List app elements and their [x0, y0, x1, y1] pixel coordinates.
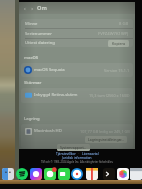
- staticText: ·: [76, 152, 82, 156]
- staticText: Inbyggd Retina-skärm: [34, 92, 78, 98]
- staticText: Version 15.1.1: [104, 68, 130, 73]
- button[interactable]: Messenger: [30, 168, 42, 180]
- button[interactable]: Spotify: [16, 168, 28, 180]
- button[interactable]: Uttest datering: [21, 39, 133, 47]
- button[interactable]: Finder: [2, 168, 14, 180]
- button[interactable]: Finder window: [130, 168, 142, 180]
- staticText: Licensavtal: [82, 152, 99, 156]
- button[interactable]: Serienummer: [21, 29, 133, 38]
- button[interactable]: Notes: [86, 168, 98, 180]
- button[interactable]: Minne: [21, 19, 133, 28]
- staticText: macOS: [24, 55, 39, 61]
- button[interactable]: Back: [21, 5, 28, 12]
- button[interactable]: Messages: [44, 168, 56, 180]
- button[interactable]: macOS Sequoia: [21, 63, 133, 77]
- button[interactable]: Inbyggd Retina-skärm: [21, 88, 133, 102]
- staticText: Uttest datering: [25, 40, 55, 46]
- button[interactable]: Forward: [28, 5, 35, 12]
- staticText: Kopiera: [112, 41, 125, 46]
- staticText: Systemrapport…: [60, 145, 87, 150]
- button[interactable]: Lagringsinställningar…: [85, 136, 127, 143]
- button[interactable]: Systemrapport…: [57, 144, 90, 151]
- staticText: 107,77 GB ledig av 245,1 GB: [80, 129, 130, 134]
- staticText: Juridisk information: [62, 156, 92, 160]
- button[interactable]: Photos: [117, 168, 129, 180]
- staticText: 15,3 tum (2560 x 1600): [89, 93, 130, 98]
- staticText: Macintosh HD: [34, 128, 62, 134]
- staticText: FVFZ4W7K1WPJ: [98, 31, 129, 37]
- staticText: Tjänstevillkor: [56, 152, 76, 156]
- button[interactable]: Terminal: [103, 168, 115, 180]
- staticText: Minne: [25, 21, 38, 27]
- button[interactable]: Kopiera: [108, 40, 129, 47]
- button[interactable]: Safari: [71, 168, 83, 180]
- staticText: Om: [37, 4, 47, 12]
- staticText: TM och © 1983–2024 Apple Inc. Alla rätti…: [41, 160, 114, 164]
- staticText: 8 GB: [119, 21, 129, 27]
- button[interactable]: Macintosh HD: [21, 124, 133, 138]
- button[interactable]: FaceTime: [58, 168, 70, 180]
- staticText: Lagring: [24, 116, 40, 122]
- staticText: macOS Sequoia: [34, 67, 65, 73]
- staticText: Lagringsinställningar…: [88, 137, 124, 142]
- staticText: Serienummer: [25, 31, 52, 37]
- staticText: Skärmar: [24, 80, 42, 86]
